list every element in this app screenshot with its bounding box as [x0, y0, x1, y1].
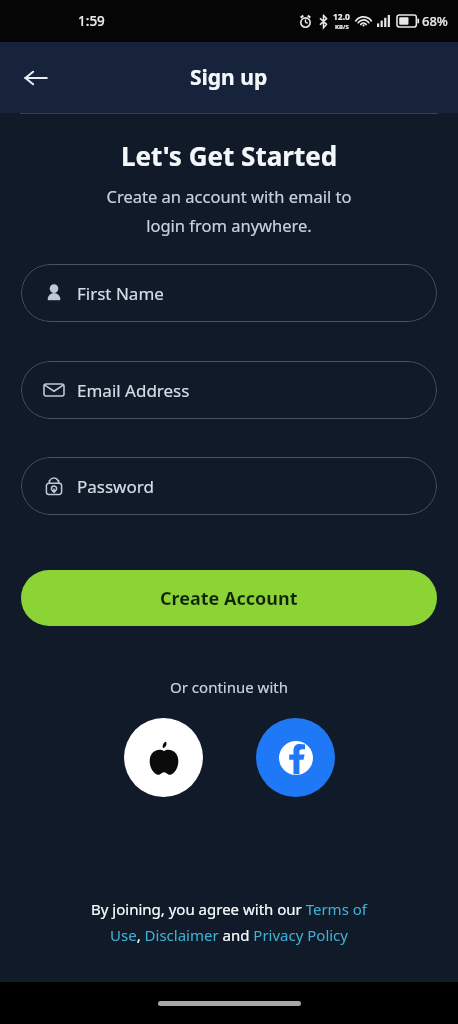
staticText: By joining, you agree with our Terms of … [40, 899, 418, 946]
button[interactable]: Email Address [21, 361, 437, 419]
staticText: Email Address [77, 379, 190, 402]
staticText: Create an account with email to login fr… [0, 185, 458, 237]
button[interactable]: Continue with Facebook [256, 718, 335, 797]
staticText: Or continue with [0, 677, 458, 697]
staticText: KB/S [335, 23, 349, 31]
button[interactable]: Create Account [21, 570, 437, 626]
staticText: Sign up [190, 63, 268, 92]
staticText: 68% [422, 12, 448, 30]
button[interactable]: By joining, you agree with our Terms of … [40, 899, 418, 946]
staticText: First Name [77, 282, 164, 305]
staticText: Let's Get Started [0, 138, 458, 173]
button[interactable]: Continue with Apple [124, 718, 203, 797]
button[interactable]: Password [21, 457, 437, 515]
staticText: 12.0 [333, 11, 350, 23]
button[interactable]: Back [12, 54, 60, 102]
staticText: 1:59 [78, 12, 105, 30]
button[interactable]: First Name [21, 264, 437, 322]
staticText: Create Account [160, 586, 298, 611]
staticText: Password [77, 475, 154, 498]
